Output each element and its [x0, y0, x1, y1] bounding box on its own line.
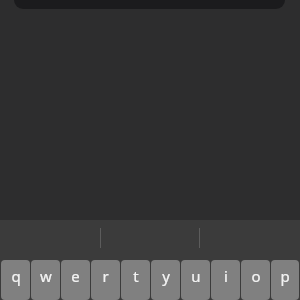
staticText: y	[162, 266, 170, 286]
staticText: q	[11, 266, 21, 286]
button[interactable]: q	[1, 260, 30, 300]
button[interactable]: u	[181, 260, 210, 300]
staticText: t	[133, 266, 139, 286]
staticText: r	[102, 266, 109, 286]
button[interactable]: i	[211, 260, 240, 300]
staticText: w	[40, 266, 52, 286]
staticText: u	[191, 266, 201, 286]
button[interactable]: r	[91, 260, 120, 300]
staticText: i	[224, 266, 228, 286]
staticText: o	[251, 266, 261, 286]
staticText: p	[280, 266, 290, 286]
button[interactable]: p	[271, 260, 299, 300]
staticText: e	[71, 266, 80, 286]
button[interactable]: y	[151, 260, 180, 300]
button[interactable]: t	[121, 260, 150, 300]
button[interactable]: e	[61, 260, 90, 300]
button[interactable]: o	[241, 260, 270, 300]
button[interactable]: w	[31, 260, 60, 300]
